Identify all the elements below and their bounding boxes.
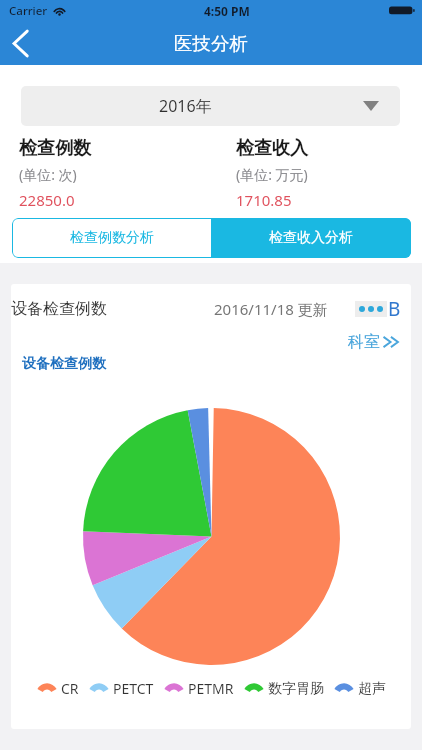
staticText: PETCT [113, 679, 154, 698]
button[interactable]: More options [355, 296, 401, 322]
staticText: 超声 [358, 680, 386, 698]
staticText: 检查收入分析 [269, 229, 353, 247]
staticText: B [388, 296, 401, 322]
staticText: 22850.0 [19, 190, 75, 210]
staticText: PETMR [188, 679, 234, 698]
staticText: 检查收入 [236, 137, 308, 160]
staticText: 4:50 PM [204, 3, 250, 19]
button[interactable]: Back [0, 21, 44, 65]
staticText: 2016年 [159, 95, 212, 117]
staticText: CR [61, 679, 79, 698]
staticText: 设备检查例数 [22, 355, 106, 373]
staticText: 医技分析 [174, 32, 248, 55]
staticText: 1710.85 [236, 190, 292, 210]
staticText: 检查例数 [19, 137, 91, 160]
button[interactable]: 检查例数分析 [12, 218, 211, 258]
staticText: 设备检查例数 [11, 299, 107, 319]
staticText: 数字胃肠 [268, 680, 324, 698]
staticText: 科室 [348, 332, 380, 352]
button[interactable]: 2016年 [21, 86, 400, 126]
staticText: (单位: 次) [19, 165, 77, 184]
staticText: (单位: 万元) [236, 165, 308, 184]
staticText: 检查例数分析 [70, 229, 154, 247]
button[interactable]: 检查收入分析 [211, 218, 411, 258]
button[interactable]: 科室 [348, 332, 401, 352]
staticText: 2016/11/18 更新 [214, 299, 328, 319]
staticText: Carrier [9, 3, 48, 19]
